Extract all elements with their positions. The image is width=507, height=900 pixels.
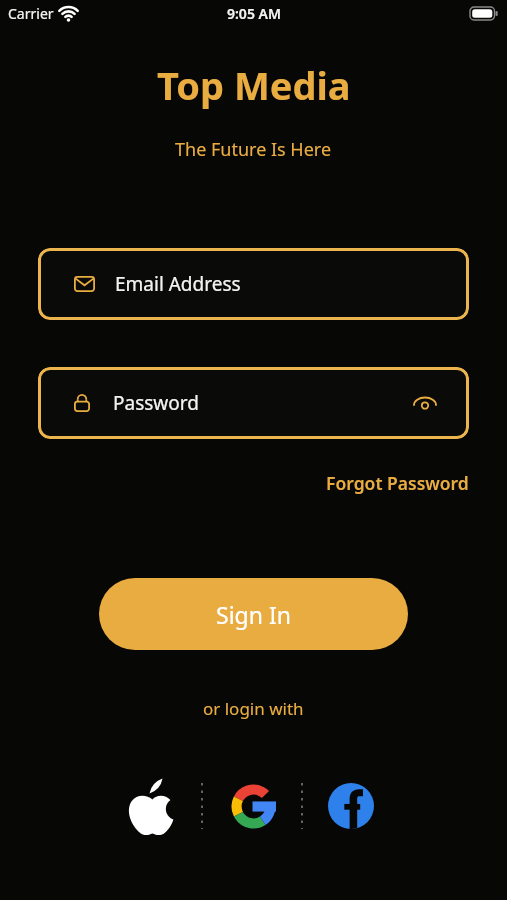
button[interactable]: Sign In: [99, 578, 408, 650]
staticText: Carrier: [8, 4, 54, 23]
button[interactable]: Forgot Password: [326, 471, 469, 495]
staticText: 9:05 AM: [227, 4, 281, 23]
button[interactable]: [225, 777, 281, 835]
staticText: Forgot Password: [326, 471, 469, 495]
staticText: Sign In: [216, 599, 291, 630]
button[interactable]: [123, 777, 179, 835]
button[interactable]: [323, 777, 379, 835]
staticText: or login with: [203, 697, 304, 720]
staticText: Password: [113, 390, 199, 416]
button[interactable]: Email Address: [38, 248, 469, 320]
staticText: The Future Is Here: [175, 137, 332, 161]
staticText: Top Media: [157, 59, 351, 111]
staticText: Email Address: [115, 271, 241, 297]
button[interactable]: Password: [38, 367, 469, 439]
